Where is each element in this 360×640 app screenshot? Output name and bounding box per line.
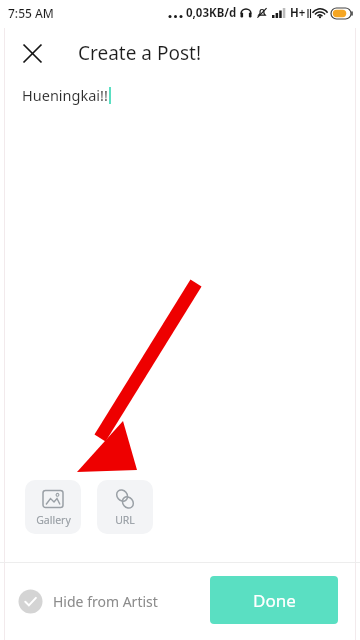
- staticText: 7:55 AM: [8, 5, 54, 21]
- staticText: 0,03KB/d: [186, 5, 237, 21]
- staticText: URL: [115, 513, 135, 527]
- button[interactable]: Hide from Artist: [17, 588, 158, 615]
- button[interactable]: Done: [210, 576, 338, 624]
- staticText: Hide from Artist: [53, 592, 158, 611]
- button[interactable]: Gallery: [25, 480, 81, 534]
- staticText: Create a Post!: [78, 40, 202, 66]
- button[interactable]: URL: [97, 480, 153, 534]
- staticText: Gallery: [36, 513, 71, 527]
- button[interactable]: Close: [17, 38, 48, 69]
- staticText: H+: [290, 5, 306, 21]
- staticText: Hueningkai!!: [22, 85, 108, 105]
- staticText: Done: [253, 589, 296, 612]
